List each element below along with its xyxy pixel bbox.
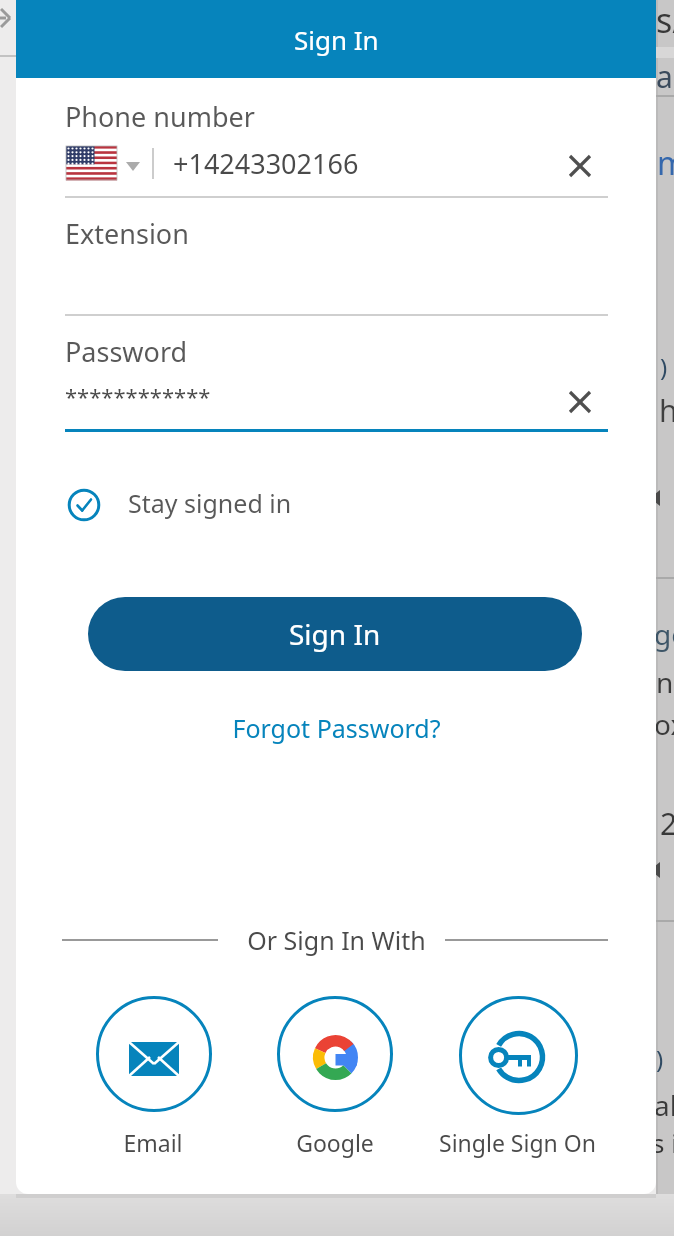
staticText: s/9 [656,0,674,43]
staticText: Password [65,333,188,370]
staticText: ************ [65,381,211,411]
staticText: Stay signed in [128,486,292,520]
staticText: ) [660,350,668,383]
staticText: ap [656,56,674,97]
button[interactable] [60,481,320,529]
button[interactable] [66,146,117,180]
staticText: Single Sign On [439,1127,596,1158]
staticText: go [654,615,674,653]
staticText: +14243302166 [173,145,359,182]
staticText: ) [656,1042,664,1075]
staticText: Sign In [294,22,379,57]
button[interactable] [459,996,578,1115]
button[interactable]: Google [85,1112,585,1172]
staticText: Sign In [289,615,381,653]
button[interactable]: Sign In [88,597,582,671]
button[interactable]: Single Sign On [267,1112,656,1172]
button[interactable] [96,996,212,1112]
button[interactable]: Forgot Password? [86,698,586,758]
staticText: ne [656,663,674,701]
staticText: Or Sign In With [247,923,426,957]
staticText: s it [652,1125,674,1160]
button[interactable] [277,996,393,1112]
staticText: m [657,141,674,185]
staticText: 2 [660,803,674,844]
staticText: Google [296,1127,374,1158]
staticText: ox [654,705,674,743]
button[interactable]: Email [16,1112,403,1172]
staticText: Email [123,1127,183,1158]
button[interactable] [570,156,590,176]
staticText: al [654,1086,674,1124]
staticText: Phone number [65,98,255,135]
staticText: Forgot Password? [232,711,441,745]
staticText: h [659,390,674,431]
staticText: Extension [65,215,189,252]
button[interactable] [570,392,590,412]
